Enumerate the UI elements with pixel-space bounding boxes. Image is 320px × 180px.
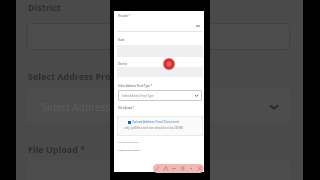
- staticText: Upload Address Proof Document: [132, 120, 179, 124]
- staticText: Home Branch Name *: [118, 149, 141, 152]
- staticText: Choose your branch: [118, 141, 139, 144]
- button[interactable]: [117, 67, 203, 77]
- other: Open dropdown: [269, 102, 279, 112]
- staticText: District: [118, 62, 127, 66]
- staticText: State: [118, 38, 125, 42]
- button[interactable]: [27, 23, 290, 50]
- staticText: only .pdf files and size should not be 2…: [124, 126, 183, 130]
- button[interactable]: Upload Address Proof Document: [117, 116, 203, 136]
- staticText: District: [28, 1, 61, 13]
- button[interactable]: Select Address Proof Type: [27, 89, 290, 123]
- staticText: Select Address Proof Type *: [28, 70, 151, 82]
- staticText: Select Address Proof Type *: [118, 84, 153, 88]
- staticText: Pincode *: [118, 14, 130, 18]
- staticText: File Upload *: [118, 106, 134, 110]
- staticText: File Upload *: [28, 143, 86, 155]
- button[interactable]: Select Address Proof Type: [118, 90, 202, 101]
- button[interactable]: [27, 161, 290, 180]
- staticText: Select Address Proof Type: [122, 94, 154, 98]
- staticText: Select Address Proof Type: [42, 100, 164, 114]
- other: Loading: [159, 54, 179, 74]
